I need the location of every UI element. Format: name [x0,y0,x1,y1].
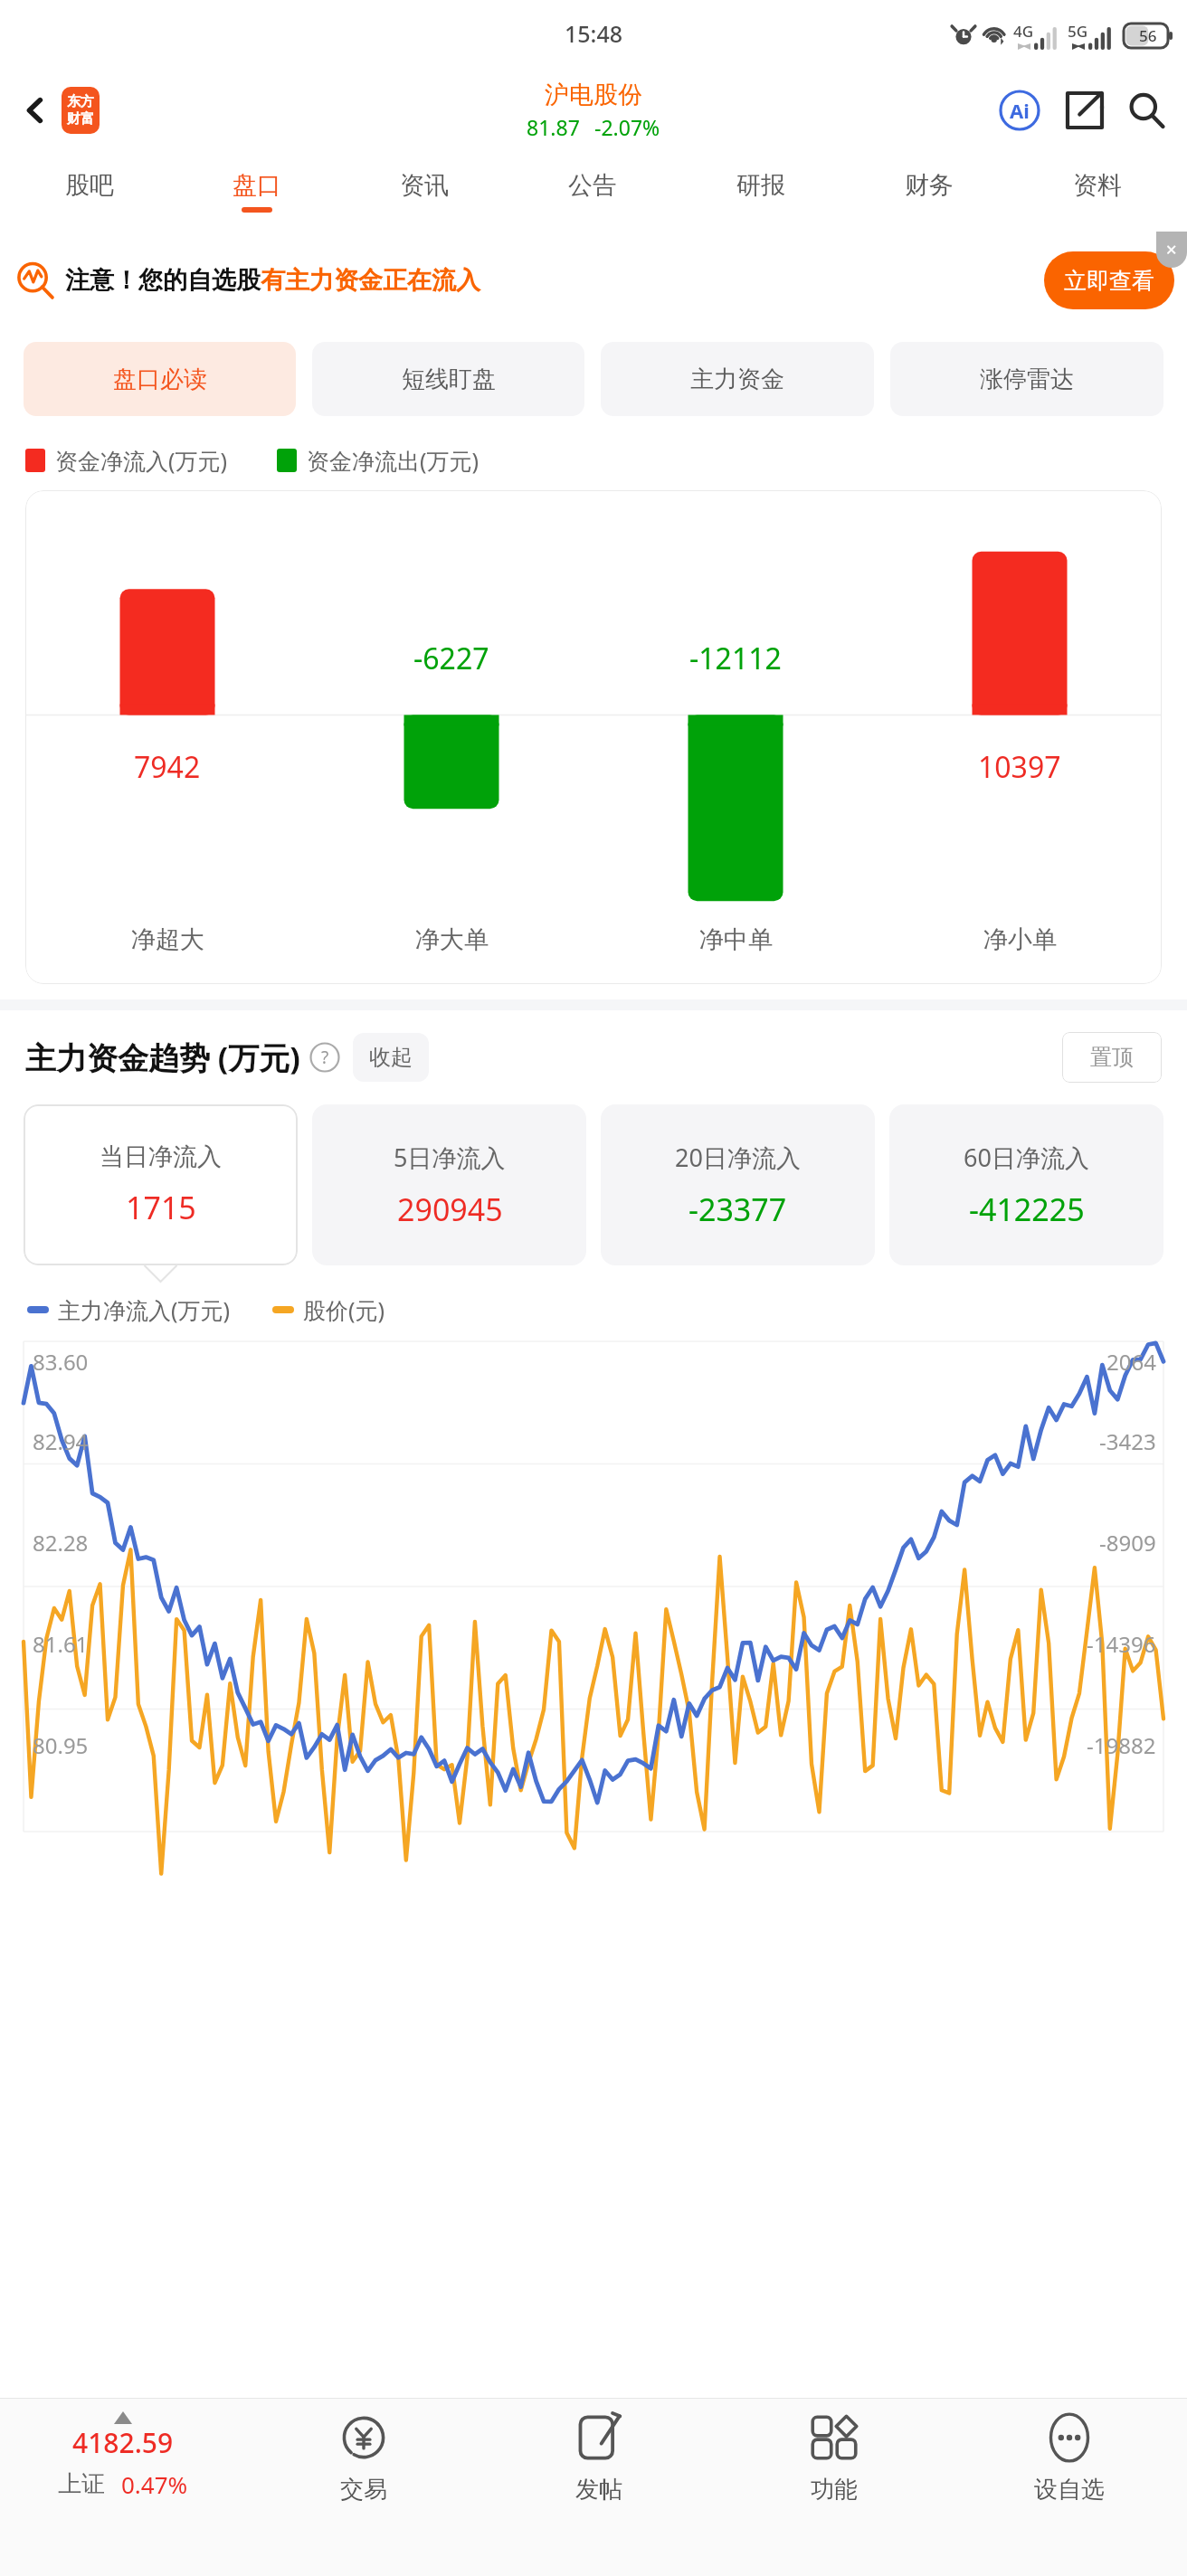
staticText: 1715 [126,1187,196,1228]
staticText: 20日净流入 [675,1141,801,1174]
staticText: 沪电股份 [545,80,642,110]
button[interactable]: 立即查看 [1044,251,1174,309]
button[interactable]: 涨停雷达 [890,342,1163,416]
staticText: 资料 [1073,170,1122,201]
staticText: 290945 [397,1189,503,1230]
button[interactable]: 功能 [717,2399,952,2576]
staticText: 功能 [811,2475,858,2505]
staticText: 80.95 [33,1730,89,1760]
staticText: -3423 [1099,1426,1156,1456]
button[interactable]: 交易 [246,2399,481,2576]
staticText: 短线盯盘 [402,365,496,394]
button[interactable]: 研报 [677,150,845,232]
staticText: 注意！您的自选股 [65,265,261,296]
button[interactable]: 设自选 [952,2399,1187,2576]
staticText: 10397 [978,747,1061,787]
staticText: 81.87 [527,113,580,141]
staticText: 82.94 [33,1426,89,1456]
staticText: 5日净流入 [394,1141,506,1174]
staticText: -8909 [1099,1528,1156,1558]
staticText: 上证 [58,2469,105,2499]
button[interactable]: 主力资金 [601,342,874,416]
staticText: -2.07% [594,113,660,141]
staticText: 净超大 [131,924,204,955]
staticText: 83.60 [33,1347,89,1377]
staticText: 4G [1013,21,1034,42]
staticText: 0.47% [121,2468,188,2500]
button[interactable]: Help [309,1042,340,1073]
button[interactable]: AI assistant [992,82,1048,138]
button[interactable]: 收起 [353,1033,429,1082]
staticText: -412225 [969,1189,1085,1230]
staticText: 主力资金 [690,365,784,394]
staticText: -19882 [1087,1730,1156,1760]
button[interactable]: 公告 [508,150,677,232]
staticText: 资金净流入(万元) [55,445,228,476]
staticText: 资讯 [400,170,449,201]
staticText: 60日净流入 [964,1141,1089,1174]
staticText: 净小单 [983,924,1057,955]
button[interactable]: 60日净流入 [889,1104,1163,1265]
staticText: 净大单 [415,924,489,955]
staticText: 56 [1139,25,1157,46]
staticText: 81.61 [33,1629,89,1659]
staticText: 5G [1068,21,1088,42]
button[interactable]: 资料 [1013,150,1182,232]
staticText: 涨停雷达 [980,365,1074,394]
staticText: 2064 [1106,1347,1156,1377]
button[interactable]: 财务 [845,150,1013,232]
button[interactable]: 20日净流入 [601,1104,875,1265]
button[interactable]: 股吧 [5,150,173,232]
staticText: 7942 [134,747,201,787]
button[interactable]: 资讯 [340,150,508,232]
staticText: 发帖 [575,2475,622,2505]
button[interactable]: 注意！您的自选股 [16,232,1174,329]
staticText: 置顶 [1090,1044,1134,1071]
staticText: 主力资金趋势 (万元) [25,1037,300,1078]
staticText: -12112 [689,639,782,678]
staticText: 主力净流入(万元) [58,1294,231,1325]
staticText: 股吧 [65,170,114,201]
staticText: 盘口必读 [113,365,207,394]
button[interactable]: 发帖 [481,2399,717,2576]
button[interactable]: 盘口必读 [24,342,296,416]
staticText: Ai [1010,97,1030,124]
button[interactable]: 盘口 [173,150,340,232]
button[interactable]: Back [9,84,62,137]
button[interactable]: Search [1118,82,1174,138]
staticText: -14396 [1087,1629,1156,1659]
staticText: 收起 [369,1044,413,1071]
button[interactable]: 当日净流入 [24,1104,298,1265]
staticText: 财富 [67,110,94,128]
staticText: -23377 [688,1189,787,1230]
staticText: 交易 [340,2475,387,2505]
button[interactable]: 短线盯盘 [312,342,584,416]
staticText: 东方 [67,93,94,110]
staticText: 当日净流入 [100,1141,222,1172]
button[interactable]: Share [1057,82,1113,138]
staticText: 设自选 [1034,2475,1105,2505]
staticText: 资金净流出(万元) [307,445,480,476]
staticText: ? [321,1046,329,1069]
staticText: 净中单 [699,924,773,955]
staticText: 财务 [905,170,954,201]
staticText: 82.28 [33,1528,89,1558]
button[interactable]: 4182.59 [0,2399,246,2576]
button[interactable]: 置顶 [1062,1032,1162,1083]
button[interactable]: 5日净流入 [312,1104,586,1265]
staticText: 4182.59 [72,2424,174,2461]
button[interactable]: 东方财富 [62,87,100,134]
staticText: 15:48 [565,18,623,49]
staticText: 股价(元) [303,1294,385,1325]
button[interactable]: 7942 [25,490,1162,984]
staticText: 研报 [736,170,785,201]
staticText: 立即查看 [1064,267,1154,295]
staticText: ✕ [1165,241,1178,259]
button[interactable]: Close [1156,232,1187,268]
staticText: 公告 [568,170,617,201]
staticText: 有主力资金正在流入 [261,265,480,296]
staticText: -6227 [413,639,489,678]
staticText: 盘口 [233,170,281,201]
